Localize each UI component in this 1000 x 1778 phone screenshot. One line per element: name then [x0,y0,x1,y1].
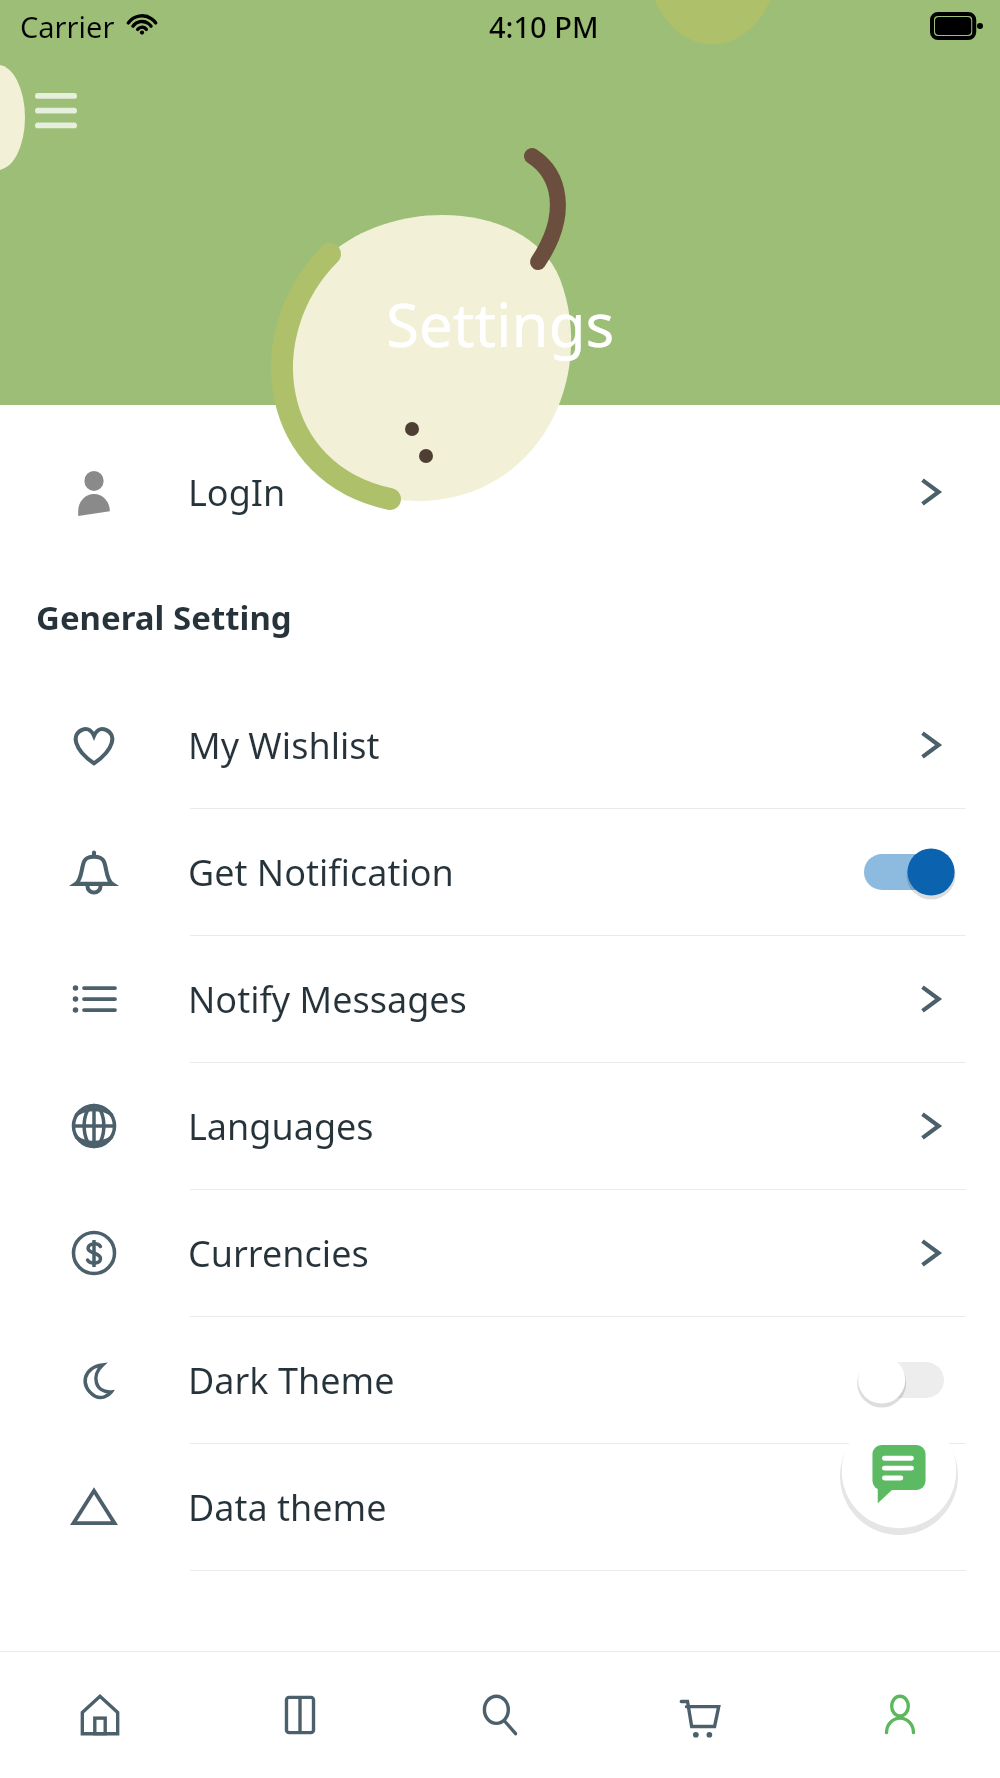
button[interactable]: Data theme [0,1444,1000,1571]
staticText: LogIn [188,468,286,517]
button[interactable]: Toggle off [864,1349,964,1411]
staticText: Dark Theme [188,1356,395,1405]
button[interactable]: Home [0,1652,200,1778]
button[interactable]: Dark Theme [0,1317,1000,1444]
button[interactable]: Toggle on [864,841,964,903]
staticText: Data theme [188,1483,387,1532]
button[interactable]: LogIn [0,437,1000,547]
staticText: Notify Messages [188,975,467,1024]
button[interactable]: Open menu [28,82,84,138]
staticText: Carrier [20,7,115,46]
button[interactable]: Currencies [0,1190,1000,1317]
button[interactable]: Search [400,1652,600,1778]
staticText: General Setting [36,595,292,640]
button[interactable]: Languages [0,1063,1000,1190]
staticText: Languages [188,1102,374,1151]
staticText: Get Notification [188,848,454,897]
button[interactable]: Catalog [200,1652,400,1778]
staticText: 4:10 PM [489,7,599,46]
staticText: Currencies [188,1229,369,1278]
button[interactable]: My Wishlist [0,682,1000,809]
button[interactable]: Get Notification [0,809,1000,936]
button[interactable]: Chat support [840,1412,958,1530]
button[interactable]: Notify Messages [0,936,1000,1063]
staticText: Settings [386,283,615,365]
staticText: My Wishlist [188,721,380,770]
button[interactable]: Profile [800,1652,1000,1778]
button[interactable]: Cart [600,1652,800,1778]
